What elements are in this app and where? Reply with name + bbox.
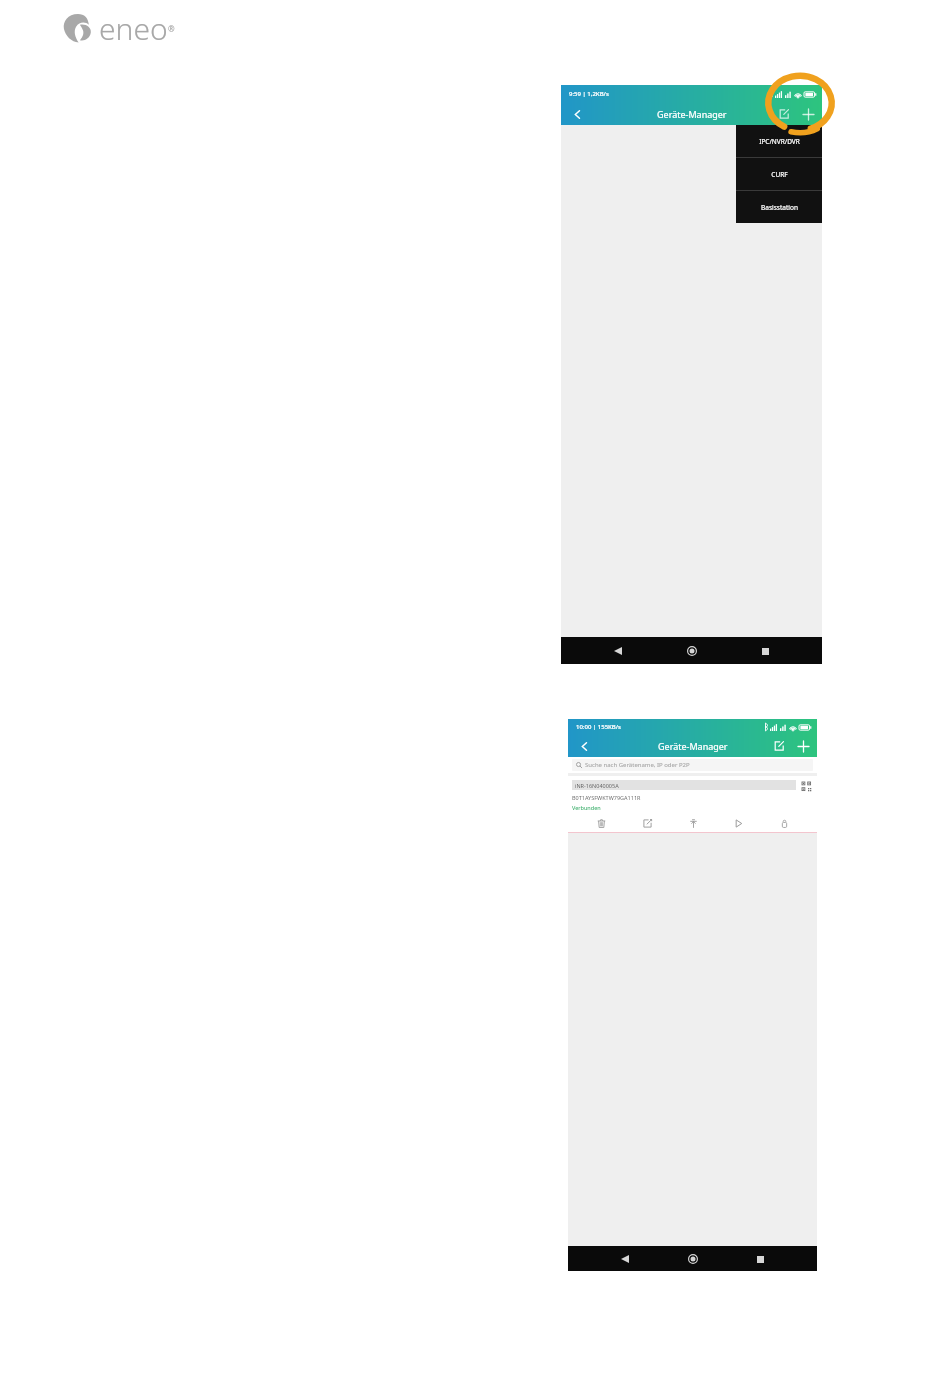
button[interactable]: Upgrade [680,815,706,832]
button[interactable]: Zurück [567,104,587,124]
button[interactable]: Löschen [588,815,614,832]
button[interactable]: Sperren [771,815,797,832]
button[interactable]: Gerät hinzufügen [794,737,812,755]
staticText: iNR-16N040005A [575,782,619,789]
button[interactable]: Suche nach Gerätename, IP oder P2P [572,759,813,771]
staticText: ® [168,23,175,34]
staticText: Suche nach Gerätename, IP oder P2P [585,761,690,769]
button[interactable]: Übersicht [751,1250,769,1268]
button[interactable]: Gerät hinzufügen [799,105,817,123]
button[interactable]: Startseite [684,1250,702,1268]
staticText: 10:00 | 155KB/s [576,723,622,731]
staticText: Verbunden [572,804,601,811]
staticText: Basisstation [761,203,798,212]
staticText: IPC/NVR/DVR [759,137,800,146]
button[interactable]: Startseite [683,642,701,660]
button[interactable]: Zurück [609,642,627,660]
staticText: Geräte-Manager [658,740,728,752]
staticText: CURF [771,170,788,179]
button[interactable]: Zurück [574,736,594,756]
button[interactable]: QR-Code [800,780,813,793]
button[interactable]: Zurück [616,1250,634,1268]
staticText: B0T1AYSFWKTW79GA111R [572,794,641,801]
button[interactable]: CURF [736,158,822,190]
button[interactable]: Übersicht [756,642,774,660]
button[interactable]: Exportieren [775,105,793,123]
button[interactable]: Exportieren [770,737,788,755]
staticText: eneo [99,8,168,48]
button[interactable]: IPC/NVR/DVR [736,125,822,157]
staticText: 9:59 | 1,2KB/s [569,90,609,98]
button[interactable]: Bearbeiten [634,815,660,832]
staticText: Geräte-Manager [657,108,727,120]
button[interactable]: Wiedergabe [725,815,751,832]
button[interactable]: Basisstation [736,191,822,223]
